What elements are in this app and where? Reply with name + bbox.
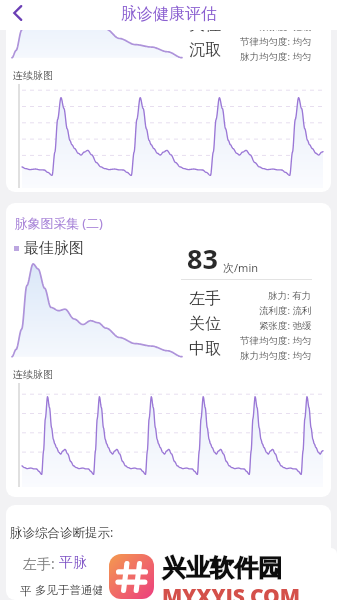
staticText: 左手 xyxy=(189,289,221,309)
staticText: 兴业软件园 xyxy=(162,553,282,583)
staticText: 沉取 xyxy=(189,40,221,60)
staticText: 节律均匀度: 均匀 xyxy=(240,35,312,48)
staticText: 连续脉图 xyxy=(13,69,53,82)
staticText: 平 xyxy=(20,583,35,599)
staticText: 中取 xyxy=(189,339,221,359)
staticText: 脉力: 有力 xyxy=(268,289,312,302)
staticText: 关位 xyxy=(189,30,221,35)
staticText: 紧张度: 弛缓 xyxy=(259,319,312,332)
staticText: 多见于普通健康人群 xyxy=(35,583,139,597)
button[interactable]: Back xyxy=(0,0,32,30)
staticText: 次/min xyxy=(223,260,259,275)
staticText: 左手: xyxy=(23,554,59,573)
staticText: 脉诊健康评估 xyxy=(121,4,217,24)
staticText: 脉诊综合诊断提示: xyxy=(10,524,114,541)
staticText: 关位 xyxy=(189,314,221,334)
staticText: 流利度: 流利 xyxy=(259,304,312,317)
staticText: 节律均匀度: 均匀 xyxy=(240,334,312,347)
staticText: 脉力均匀度: 均匀 xyxy=(240,50,312,63)
staticText: 脉象图采集 (二) xyxy=(15,214,103,231)
staticText: 脉力均匀度: 均匀 xyxy=(240,349,312,362)
staticText: MYXYJS.COM xyxy=(162,582,301,600)
staticText: 连续脉图 xyxy=(13,368,53,381)
staticText: 紧张度: 弛缓 xyxy=(259,30,312,33)
staticText: 平脉 xyxy=(59,554,87,572)
staticText: 最佳脉图 xyxy=(24,239,84,258)
staticText: 83 xyxy=(187,240,218,277)
